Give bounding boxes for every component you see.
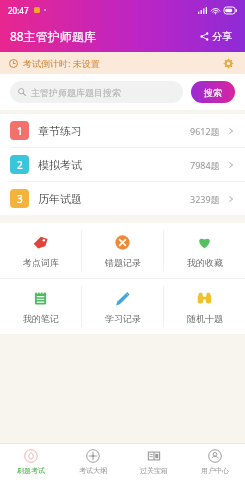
staticText: 88主管护师题库	[10, 28, 96, 44]
staticText: 我的笔记	[23, 313, 59, 324]
staticText: 主管护师题库题目搜索	[31, 87, 121, 98]
button[interactable]: 考点词库	[0, 223, 81, 278]
staticText: 7984题	[190, 159, 220, 171]
staticText: 分享	[212, 30, 232, 43]
button[interactable]: 刷题考试	[0, 444, 62, 480]
staticText: 学习记录	[105, 313, 141, 324]
button[interactable]: 分享	[197, 27, 235, 46]
staticText: 9612题	[190, 125, 220, 137]
staticText: 20:47	[8, 5, 29, 16]
staticText: 随机十题	[187, 313, 223, 324]
staticText: 用户中心	[201, 466, 229, 475]
staticText: 我的收藏	[187, 257, 223, 268]
button[interactable]: 用户中心	[184, 444, 245, 480]
button[interactable]: 3	[0, 182, 245, 215]
button[interactable]: 我的收藏	[164, 223, 245, 278]
staticText: 历年试题	[38, 192, 82, 206]
staticText: 错题记录	[105, 257, 141, 268]
staticText: 章节练习	[38, 124, 82, 138]
staticText: 考点词库	[23, 257, 59, 268]
staticText: 搜索	[204, 87, 222, 98]
staticText: 3239题	[190, 193, 220, 205]
staticText: 3	[17, 192, 23, 206]
staticText: 模拟考试	[38, 158, 82, 172]
button[interactable]: 主管护师题库题目搜索	[10, 81, 183, 103]
button[interactable]: 1	[0, 114, 245, 147]
button[interactable]: 我的笔记	[0, 279, 81, 334]
staticText: 考试大纲	[79, 466, 107, 475]
button[interactable]: 学习记录	[82, 279, 163, 334]
staticText: 2	[17, 158, 23, 172]
button[interactable]: 设置倒计时	[221, 56, 236, 71]
button[interactable]: 随机十题	[164, 279, 245, 334]
staticText: 1	[17, 124, 23, 138]
button[interactable]: 过关宝箱	[123, 444, 184, 480]
button[interactable]: 考试倒计时: 未设置	[0, 52, 245, 74]
button[interactable]: 2	[0, 148, 245, 181]
staticText: 刷题考试	[17, 466, 45, 475]
staticText: 过关宝箱	[140, 466, 168, 475]
button[interactable]: 搜索	[191, 81, 235, 103]
button[interactable]: 考试大纲	[62, 444, 123, 480]
button[interactable]: 错题记录	[82, 223, 163, 278]
staticText: 考试倒计时: 未设置	[23, 57, 100, 69]
